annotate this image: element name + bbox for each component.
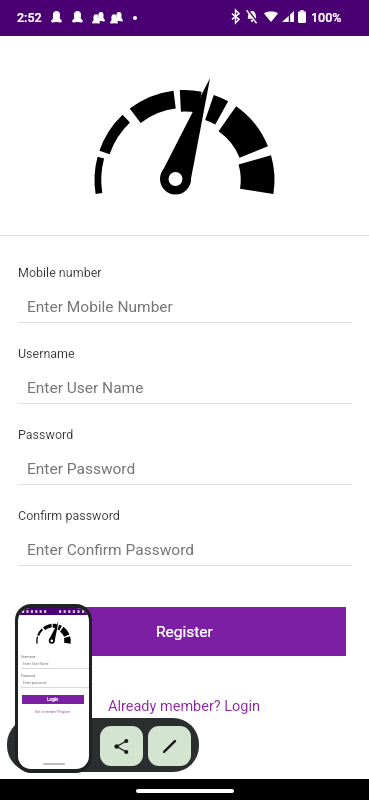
- button[interactable]: Enter User Name: [18, 379, 352, 397]
- button[interactable]: Edit: [148, 726, 191, 766]
- staticText: Enter Confirm Password: [27, 541, 194, 559]
- staticText: Enter User Name: [23, 662, 49, 666]
- button[interactable]: Register: [23, 607, 346, 656]
- staticText: Confirm password: [18, 508, 120, 523]
- staticText: 2:52: [17, 10, 42, 25]
- staticText: Enter password: [23, 681, 47, 685]
- button[interactable]: Enter Mobile Number: [18, 298, 352, 316]
- button[interactable]: Enter Confirm Password: [18, 541, 352, 559]
- staticText: Not a member? Register: [35, 710, 71, 714]
- button[interactable]: Already member? Login: [102, 694, 267, 719]
- button[interactable]: Share: [100, 726, 143, 766]
- staticText: Already member? Login: [108, 698, 261, 715]
- staticText: Login: [47, 697, 59, 702]
- staticText: Username: [21, 655, 36, 659]
- staticText: Enter Password: [27, 460, 136, 478]
- staticText: Register: [156, 623, 213, 641]
- staticText: Enter Mobile Number: [27, 298, 173, 316]
- staticText: Password: [21, 674, 36, 678]
- staticText: 100%: [311, 10, 342, 25]
- staticText: Password: [18, 427, 74, 442]
- staticText: Mobile number: [18, 265, 102, 280]
- staticText: Username: [18, 346, 75, 361]
- button[interactable]: Enter Password: [18, 460, 352, 478]
- staticText: Enter User Name: [27, 379, 144, 397]
